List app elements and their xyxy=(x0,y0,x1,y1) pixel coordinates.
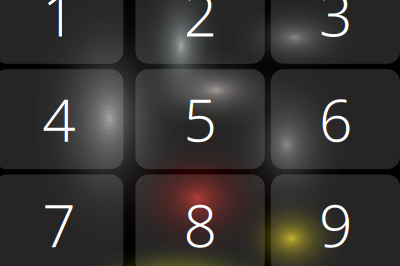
staticText: 8 xyxy=(184,185,217,263)
staticText: 4 xyxy=(42,80,75,158)
button[interactable]: 4 xyxy=(0,69,123,169)
button[interactable]: 1 xyxy=(0,0,123,64)
button[interactable]: 2 xyxy=(135,0,265,64)
button[interactable]: 5 xyxy=(135,69,265,169)
staticText: 6 xyxy=(319,80,352,158)
staticText: 3 xyxy=(319,0,352,53)
staticText: 9 xyxy=(319,185,352,263)
button[interactable]: 6 xyxy=(271,69,400,169)
button[interactable]: 7 xyxy=(0,174,123,266)
button[interactable]: 9 xyxy=(271,174,400,266)
button[interactable]: 8 xyxy=(135,174,265,266)
staticText: 1 xyxy=(42,0,75,53)
staticText: 5 xyxy=(184,80,217,158)
staticText: 2 xyxy=(184,0,217,53)
staticText: 7 xyxy=(42,185,75,263)
button[interactable]: 3 xyxy=(271,0,400,64)
